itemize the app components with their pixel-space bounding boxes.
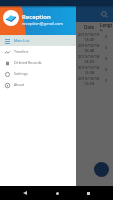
staticText: Length — [100, 22, 113, 31]
staticText: 0 — [105, 34, 108, 39]
button[interactable]: 2019/10/19 — [78, 31, 113, 42]
staticText: 0 — [105, 67, 108, 72]
staticText: 13:54 — [84, 81, 95, 86]
staticText: 0 — [105, 45, 108, 50]
staticText: 18:48 — [84, 48, 95, 53]
button[interactable]: 2019/10/18 — [78, 42, 113, 53]
button[interactable]: Deleted Records — [0, 57, 76, 68]
staticText: Deleted Records — [14, 60, 42, 65]
button[interactable]: Home — [50, 186, 64, 200]
staticText: About — [14, 82, 25, 87]
button[interactable]: Back — [18, 186, 32, 200]
staticText: 0 — [105, 78, 108, 83]
staticText: 2019/10/18 — [78, 54, 100, 59]
staticText: 2019/10/18 — [78, 65, 100, 70]
staticText: reception@gmail.com — [22, 21, 64, 26]
staticText: Timeline — [14, 49, 29, 54]
staticText: 2019/10/18 — [78, 43, 100, 48]
staticText: Settings — [14, 71, 28, 76]
button[interactable]: About — [0, 79, 76, 90]
staticText: 13:58 — [84, 70, 95, 75]
staticText: Date — [84, 24, 95, 30]
button[interactable]: Timeline — [0, 46, 76, 57]
button[interactable]: Record — [94, 162, 109, 177]
button[interactable]: Recents — [81, 186, 95, 200]
staticText: 2019/10/18 — [78, 76, 100, 81]
button[interactable]: 2019/10/18 — [78, 53, 113, 64]
staticText: 13:49 — [84, 37, 95, 42]
button[interactable]: Search — [98, 8, 110, 20]
staticText: 2019/10/19 — [78, 32, 100, 37]
staticText: 0 — [105, 56, 108, 61]
button[interactable]: 2019/10/18 — [78, 75, 113, 86]
staticText: 14:03 — [84, 59, 95, 64]
staticText: Main List — [14, 38, 30, 43]
button[interactable]: 2019/10/18 — [78, 64, 113, 75]
button[interactable]: Main List — [0, 35, 76, 46]
staticText: Reception — [22, 13, 51, 21]
button[interactable]: Settings — [0, 68, 76, 79]
